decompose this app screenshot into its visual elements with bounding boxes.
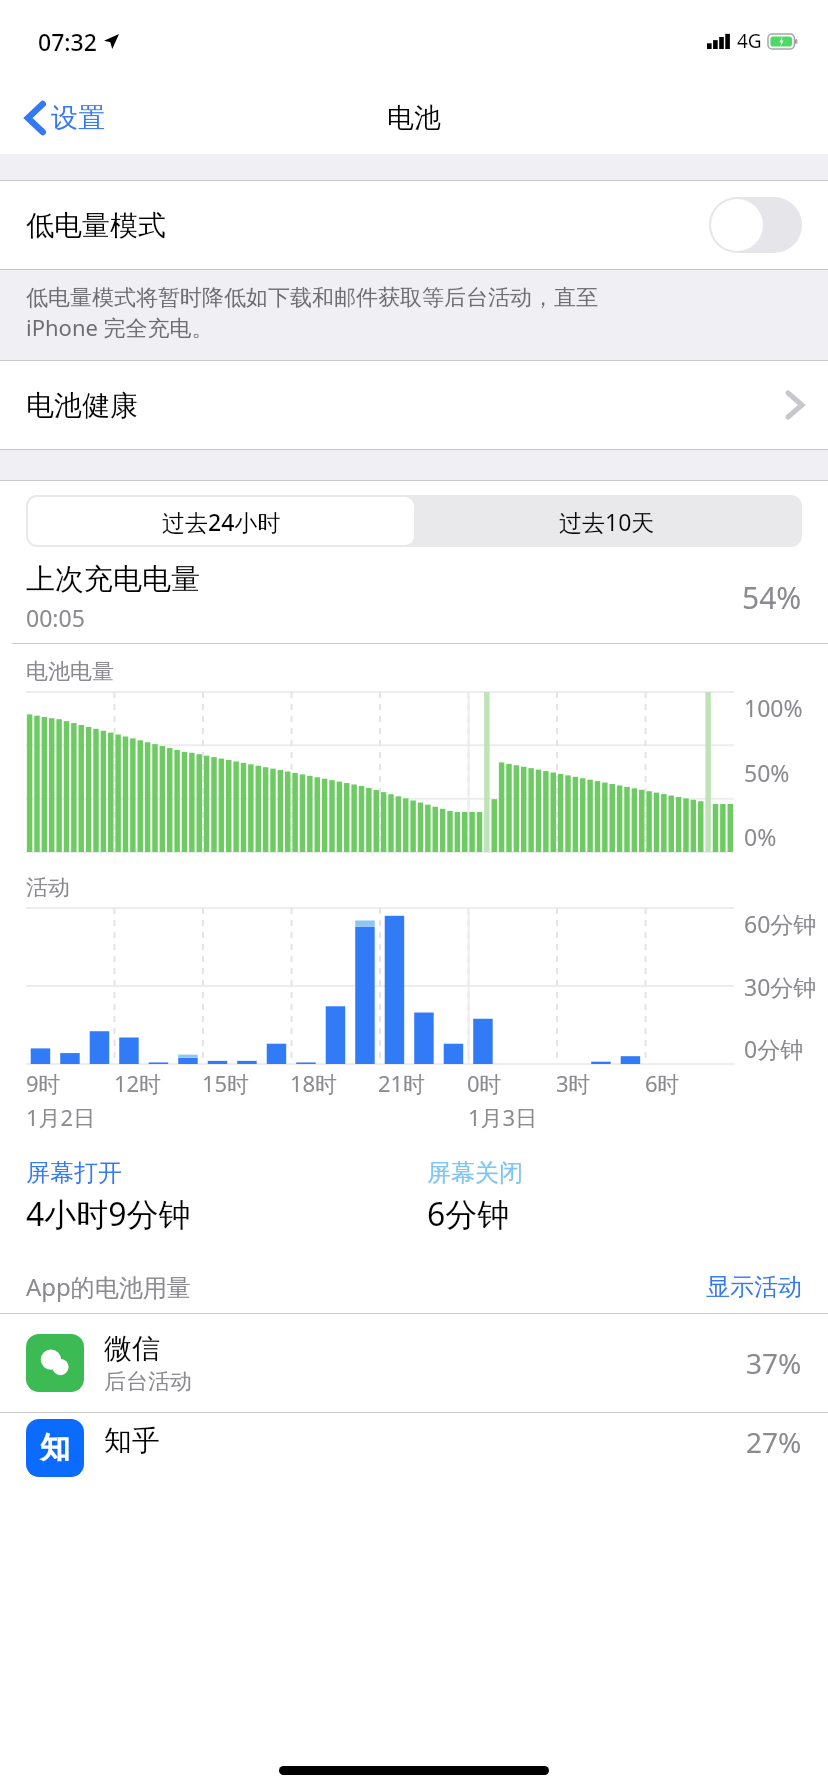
staticText: 9时 <box>26 1068 61 1098</box>
staticText: 0分钟 <box>744 1033 804 1064</box>
staticText: 12时 <box>114 1068 162 1098</box>
staticText: 屏幕关闭 <box>427 1158 523 1188</box>
staticText: 知乎 <box>104 1423 160 1458</box>
staticText: 30分钟 <box>744 971 817 1002</box>
staticText: 100% <box>744 692 803 723</box>
staticText: 后台活动 <box>104 1368 192 1396</box>
staticText: 设置 <box>51 101 105 135</box>
staticText: 3时 <box>556 1068 591 1098</box>
staticText: 00:05 <box>26 602 85 633</box>
staticText: 21时 <box>378 1068 426 1098</box>
staticText: 54% <box>742 577 802 618</box>
staticText: 低电量模式 <box>26 208 166 243</box>
staticText: 60分钟 <box>744 908 817 939</box>
staticText: 6分钟 <box>427 1192 510 1236</box>
staticText: 显示活动 <box>706 1272 802 1302</box>
staticText: 4G <box>737 28 762 54</box>
button[interactable]: 显示活动 <box>706 1272 802 1302</box>
staticText: 0% <box>744 821 777 852</box>
staticText: 4小时9分钟 <box>26 1192 191 1236</box>
staticText: 过去24小时 <box>162 506 281 537</box>
staticText: 50% <box>744 757 790 788</box>
staticText: 上次充电电量 <box>26 561 200 598</box>
button[interactable]: 低电量模式开关 <box>709 197 802 253</box>
staticText: App的电池用量 <box>26 1270 191 1303</box>
button[interactable]: 过去24小时 <box>28 497 414 545</box>
button[interactable]: 设置 <box>20 95 113 141</box>
staticText: 活动 <box>26 874 70 902</box>
staticText: 电池 <box>387 101 441 135</box>
button[interactable]: 电池健康 <box>0 361 828 449</box>
staticText: 电池健康 <box>26 388 138 423</box>
staticText: 18时 <box>290 1068 338 1098</box>
staticText: 0时 <box>467 1068 502 1098</box>
staticText: 1月2日 <box>26 1102 96 1132</box>
staticText: 15时 <box>202 1068 250 1098</box>
staticText: 07:32 <box>38 26 97 57</box>
button[interactable]: 知 <box>0 1413 828 1483</box>
staticText: 27% <box>746 1423 802 1461</box>
staticText: 微信 <box>104 1331 160 1366</box>
button[interactable]: 过去10天 <box>414 497 800 545</box>
button[interactable]: 低电量模式 <box>0 181 828 269</box>
staticText: 6时 <box>645 1068 680 1098</box>
staticText: 知 <box>40 1429 70 1467</box>
staticText: 电池电量 <box>26 658 114 686</box>
staticText: 低电量模式将暂时降低如下载和邮件获取等后台活动，直至 <box>26 284 598 312</box>
staticText: 1月3日 <box>468 1102 538 1132</box>
button[interactable]: 微信 <box>0 1314 828 1412</box>
staticText: 37% <box>746 1344 802 1382</box>
staticText: iPhone 完全充电。 <box>26 312 214 342</box>
staticText: 过去10天 <box>559 506 655 537</box>
staticText: 屏幕打开 <box>26 1158 122 1188</box>
